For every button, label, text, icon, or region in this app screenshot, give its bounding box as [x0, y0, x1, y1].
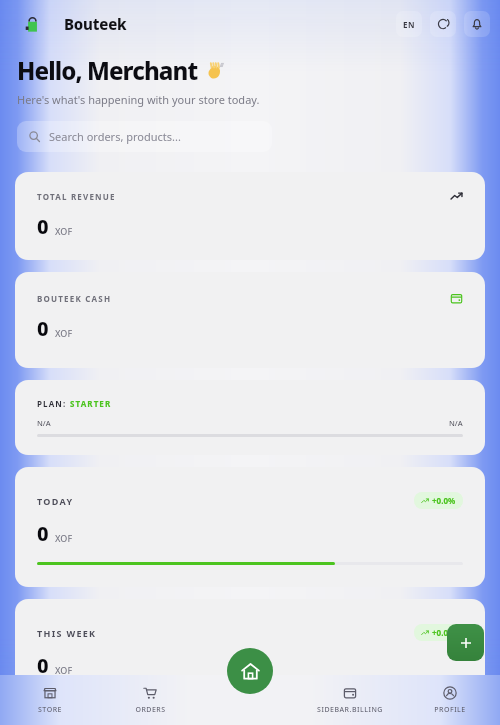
staticText: THIS WEEK: [37, 627, 97, 639]
button[interactable]: TODAY: [15, 467, 485, 587]
staticText: +0.0%: [432, 627, 456, 638]
staticText: 0: [37, 652, 49, 679]
staticText: 0: [37, 315, 49, 342]
button[interactable]: Search orders, products...: [17, 121, 272, 152]
button[interactable]: EN: [396, 11, 422, 37]
other: Home: [227, 648, 273, 694]
staticText: XOF: [55, 327, 73, 339]
staticText: PROFILE: [434, 705, 466, 715]
button[interactable]: BOUTEEK CASH: [15, 272, 485, 368]
staticText: SIDEBAR.BILLING: [317, 705, 383, 715]
button[interactable]: SIDEBAR.BILLING: [300, 675, 400, 725]
button[interactable]: Home: [227, 648, 273, 698]
button[interactable]: PROFILE: [400, 675, 500, 725]
staticText: Hello, Merchant: [17, 54, 198, 87]
staticText: 0: [37, 520, 49, 547]
staticText: XOF: [55, 532, 73, 544]
button[interactable]: THIS WEEK: [15, 599, 485, 719]
staticText: STORE: [38, 705, 62, 715]
button[interactable]: TOTAL REVENUE: [15, 172, 485, 260]
staticText: Here's what's happening with your store …: [17, 92, 260, 107]
staticText: N/A: [37, 418, 51, 428]
button[interactable]: Bouteek logo: [20, 13, 42, 35]
staticText: +0.0%: [432, 495, 456, 506]
button[interactable]: PLAN:: [15, 380, 485, 455]
staticText: XOF: [55, 664, 73, 676]
staticText: 0: [37, 213, 49, 240]
staticText: BOUTEEK CASH: [37, 293, 112, 304]
staticText: Bouteek: [64, 14, 127, 34]
staticText: TOTAL REVENUE: [37, 191, 116, 202]
button[interactable]: ORDERS: [100, 675, 200, 725]
button[interactable]: Notifications: [464, 11, 490, 37]
staticText: Search orders, products...: [49, 129, 181, 144]
button[interactable]: Add: [447, 624, 484, 661]
staticText: ORDERS: [135, 705, 166, 715]
button[interactable]: Dark mode: [430, 11, 456, 37]
staticText: XOF: [55, 225, 73, 237]
staticText: EN: [403, 19, 416, 30]
button[interactable]: STORE: [0, 675, 100, 725]
staticText: PLAN:: [37, 398, 70, 409]
staticText: STARTER: [70, 398, 112, 409]
staticText: TODAY: [37, 495, 74, 507]
staticText: N/A: [449, 418, 463, 428]
